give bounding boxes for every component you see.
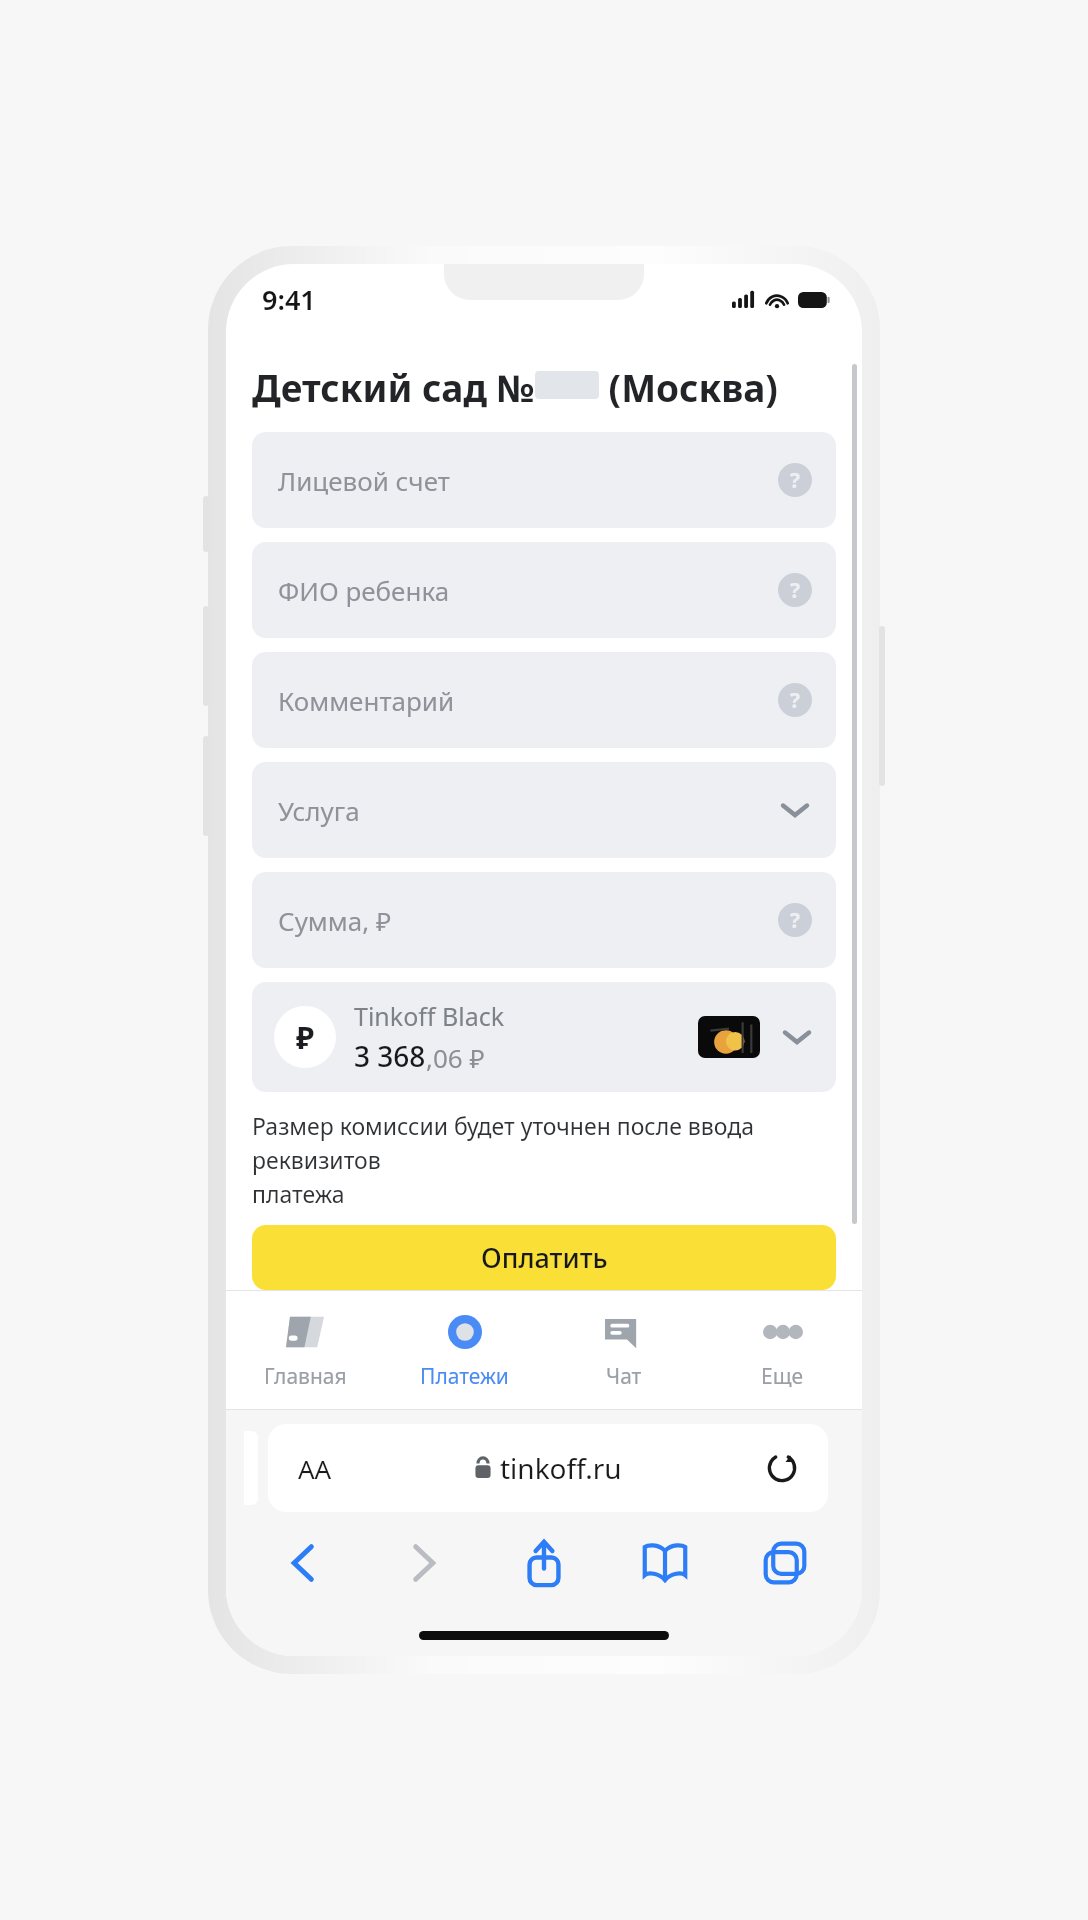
- other: Help: [778, 683, 812, 717]
- button[interactable]: Главная: [226, 1291, 385, 1409]
- staticText: Детский сад №: [252, 362, 535, 412]
- staticText: ,06 ₽: [426, 1040, 485, 1075]
- staticText: ФИО ребенка: [278, 573, 450, 608]
- button[interactable]: Чат: [544, 1291, 703, 1409]
- staticText: ?: [790, 576, 801, 605]
- staticText: ?: [790, 466, 801, 495]
- staticText: 9:41: [262, 281, 316, 318]
- button[interactable]: Еще: [703, 1291, 862, 1409]
- staticText: Еще: [761, 1362, 804, 1391]
- button[interactable]: Оплатить: [252, 1225, 836, 1290]
- staticText: Главная: [264, 1362, 347, 1391]
- staticText: tinkoff.ru: [500, 1449, 622, 1487]
- button[interactable]: ₽: [252, 982, 836, 1092]
- staticText: Лицевой счет: [278, 463, 450, 498]
- button[interactable]: Tabs: [752, 1530, 818, 1596]
- other: Help: [778, 463, 812, 497]
- other: Reload: [764, 1450, 800, 1486]
- staticText: ₽: [296, 1017, 314, 1058]
- staticText: Оплатить: [481, 1239, 608, 1276]
- button[interactable]: ФИО ребенка: [252, 542, 836, 638]
- staticText: Сумма, ₽: [278, 903, 392, 938]
- staticText: Tinkoff Black: [354, 999, 505, 1033]
- staticText: Чат: [606, 1362, 642, 1391]
- staticText: Размер комиссии будет уточнен после ввод…: [252, 1110, 836, 1209]
- button[interactable]: Сумма, ₽: [252, 872, 836, 968]
- button[interactable]: Лицевой счет: [252, 432, 836, 528]
- staticText: (Москва): [599, 362, 778, 412]
- button[interactable]: AA: [268, 1424, 828, 1512]
- button[interactable]: Bookmarks: [632, 1530, 698, 1596]
- other: Help: [778, 903, 812, 937]
- other: Change card: [780, 1020, 814, 1054]
- other: Expand: [778, 793, 812, 827]
- staticText: ?: [790, 906, 801, 935]
- other: Help: [778, 573, 812, 607]
- button[interactable]: Платежи: [385, 1291, 544, 1409]
- staticText: Комментарий: [278, 683, 455, 718]
- staticText: AA: [298, 1451, 332, 1486]
- staticText: ?: [790, 686, 801, 715]
- staticText: 3 368: [354, 1037, 426, 1075]
- staticText: Услуга: [278, 793, 360, 828]
- button[interactable]: Share: [511, 1530, 577, 1596]
- button[interactable]: Forward: [391, 1530, 457, 1596]
- button[interactable]: Комментарий: [252, 652, 836, 748]
- button[interactable]: Back: [270, 1530, 336, 1596]
- button[interactable]: Услуга: [252, 762, 836, 858]
- staticText: Платежи: [420, 1362, 509, 1391]
